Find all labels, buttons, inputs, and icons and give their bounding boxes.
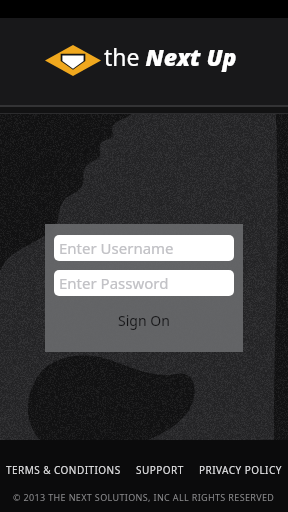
staticText: Enter Username [59,238,174,258]
button[interactable]: Enter Password [54,270,234,296]
staticText: © 2013 THE NEXT SOLUTIONS, INC ALL RIGHT… [13,491,275,503]
button[interactable]: PRIVACY POLICY [193,440,288,500]
button[interactable]: Sign On [45,296,243,352]
staticText: SUPPORT [136,463,184,477]
staticText: PRIVACY POLICY [199,463,282,477]
button[interactable]: TERMS & CONDITIONS [0,440,127,500]
button[interactable]: SUPPORT [130,440,190,500]
staticText: TERMS & CONDITIONS [6,463,121,477]
staticText: Enter Password [59,273,169,293]
staticText: Sign On [118,311,170,330]
button[interactable]: Enter Username [54,235,234,261]
staticText: the Next Up [104,41,237,72]
